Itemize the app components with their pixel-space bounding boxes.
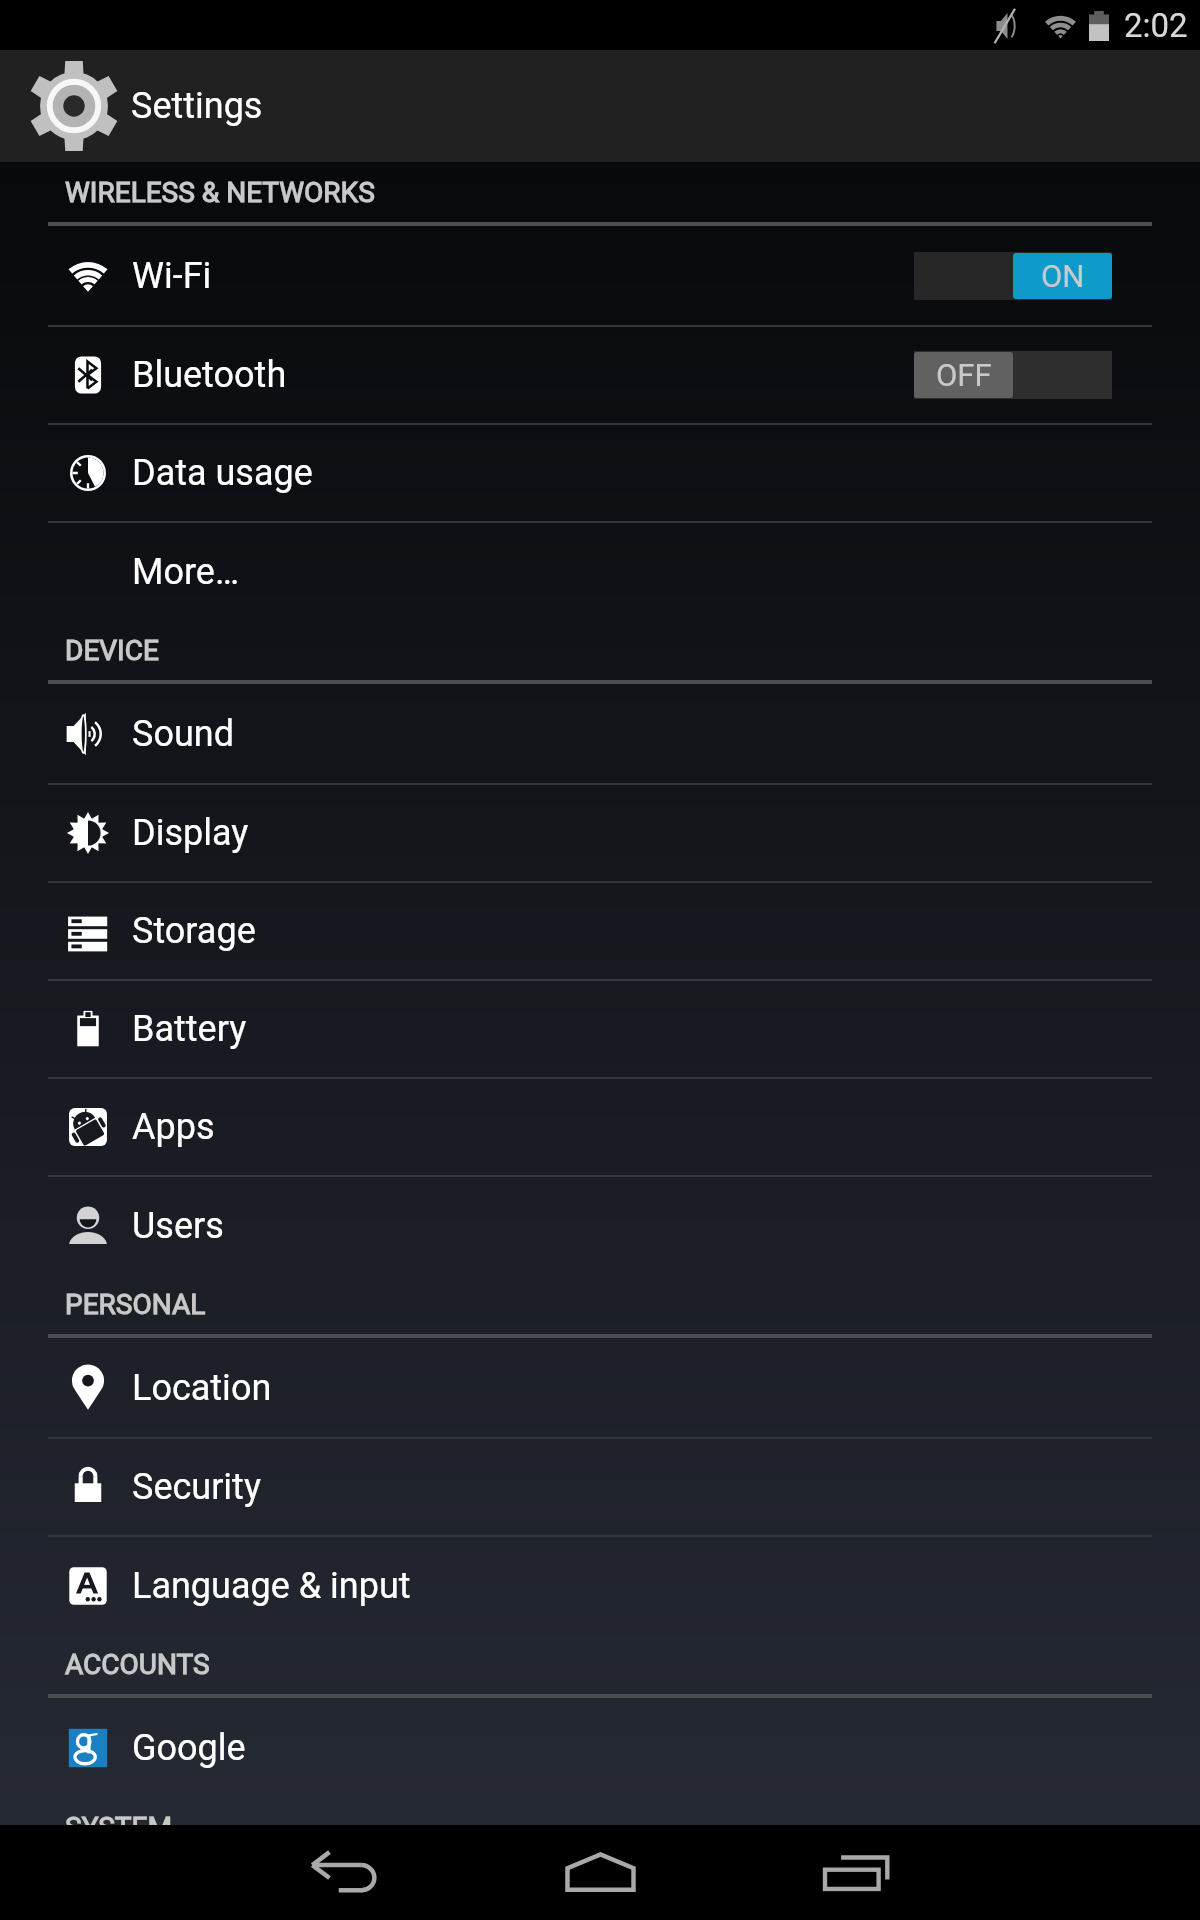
button[interactable]: Location bbox=[0, 1338, 1200, 1437]
staticText: ON bbox=[1041, 258, 1085, 294]
button[interactable]: ON bbox=[914, 252, 1112, 300]
staticText: WIRELESS & NETWORKS bbox=[65, 176, 375, 209]
staticText: More… bbox=[132, 551, 239, 593]
staticText: Storage bbox=[132, 910, 256, 952]
button[interactable]: Bluetooth bbox=[0, 327, 1200, 423]
staticText: Language & input bbox=[132, 1565, 411, 1607]
staticText: Bluetooth bbox=[132, 354, 287, 396]
button[interactable]: Back bbox=[216, 1825, 472, 1920]
staticText: OFF bbox=[936, 357, 992, 393]
staticText: Data usage bbox=[132, 452, 313, 494]
staticText: Wi-Fi bbox=[132, 255, 212, 297]
staticText: Location bbox=[132, 1367, 272, 1409]
button[interactable]: Language & input bbox=[0, 1537, 1200, 1634]
staticText: 2:02 bbox=[1124, 6, 1188, 45]
button[interactable]: Data usage bbox=[0, 425, 1200, 521]
button[interactable]: Battery bbox=[0, 981, 1200, 1077]
button[interactable]: OFF bbox=[914, 351, 1112, 399]
staticText: Display bbox=[132, 812, 249, 854]
staticText: SYSTEM bbox=[65, 1811, 172, 1844]
staticText: Security bbox=[132, 1466, 261, 1508]
button[interactable]: Users bbox=[0, 1177, 1200, 1274]
staticText: Battery bbox=[132, 1008, 247, 1050]
staticText: Sound bbox=[132, 713, 234, 755]
staticText: ACCOUNTS bbox=[65, 1648, 210, 1681]
button[interactable]: Recent apps bbox=[728, 1825, 984, 1920]
staticText: DEVICE bbox=[65, 634, 159, 667]
button[interactable]: Security bbox=[0, 1439, 1200, 1535]
button[interactable]: Google bbox=[0, 1698, 1200, 1797]
button[interactable]: Home bbox=[472, 1825, 728, 1920]
button[interactable]: Apps bbox=[0, 1079, 1200, 1175]
button[interactable]: Settings bbox=[0, 50, 287, 162]
button[interactable]: More… bbox=[0, 523, 1200, 620]
staticText: PERSONAL bbox=[65, 1288, 206, 1321]
staticText: Apps bbox=[132, 1106, 215, 1148]
staticText: Users bbox=[132, 1205, 224, 1247]
button[interactable]: Wi-Fi bbox=[0, 226, 1200, 325]
staticText: Settings bbox=[131, 85, 263, 127]
staticText: Google bbox=[132, 1727, 246, 1769]
button[interactable]: Sound bbox=[0, 684, 1200, 783]
button[interactable]: Display bbox=[0, 785, 1200, 881]
button[interactable]: Storage bbox=[0, 883, 1200, 979]
